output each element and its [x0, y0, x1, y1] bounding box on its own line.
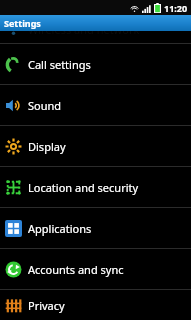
staticText: Applications [28, 221, 92, 236]
button[interactable]: Display [0, 126, 191, 166]
button[interactable]: Privacy [0, 290, 191, 320]
staticText: Call settings [28, 57, 91, 72]
staticText: Accounts and sync [28, 262, 124, 277]
button[interactable]: Sound [0, 85, 191, 125]
staticText: Settings [4, 17, 41, 29]
button[interactable]: Accounts and sync [0, 249, 191, 289]
staticText: Wireless and network [28, 22, 140, 37]
button[interactable]: Location and security [0, 167, 191, 207]
button[interactable]: Applications [0, 208, 191, 248]
staticText: 11:20 [164, 2, 188, 14]
staticText: Sound [28, 98, 62, 113]
staticText: Display [28, 139, 66, 154]
button[interactable]: Call settings [0, 44, 191, 84]
button[interactable]: Wireless and network [0, 15, 191, 43]
staticText: Privacy [28, 298, 65, 313]
staticText: Location and security [28, 180, 139, 195]
